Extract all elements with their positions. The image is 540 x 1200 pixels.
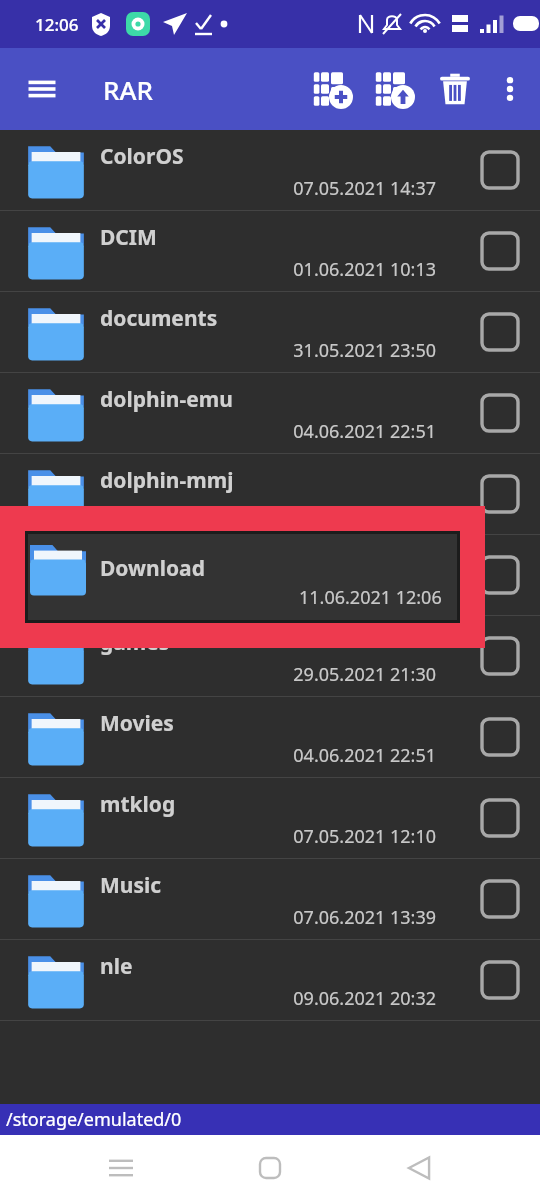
button[interactable]: Select dolphin-mmj: [472, 466, 528, 522]
staticText: 08.06.2021 11:02: [293, 500, 436, 525]
staticText: 31.05.2021 23:50: [293, 338, 436, 363]
staticText: RAR: [103, 72, 153, 107]
staticText: nle: [100, 952, 133, 981]
button[interactable]: documents: [0, 292, 540, 372]
button[interactable]: nle: [0, 940, 540, 1020]
staticText: 13.05.2021 10:51: [293, 581, 436, 606]
button[interactable]: Delete: [426, 60, 484, 118]
button[interactable]: dolphin-emu: [0, 373, 540, 453]
button[interactable]: Add to archive: [302, 58, 364, 120]
button[interactable]: Select mtklog: [472, 790, 528, 846]
button[interactable]: Extract archive: [364, 58, 426, 120]
staticText: Movies: [100, 709, 174, 738]
button[interactable]: Fonts: [0, 535, 540, 615]
button[interactable]: More options: [484, 63, 536, 115]
button[interactable]: dolphin-mmj: [0, 454, 540, 534]
button[interactable]: Select Fonts: [472, 547, 528, 603]
staticText: DCIM: [100, 223, 157, 252]
staticText: dolphin-emu: [100, 385, 233, 414]
staticText: Download: [100, 554, 205, 583]
button[interactable]: Select DCIM: [472, 223, 528, 279]
button[interactable]: DCIM: [0, 211, 540, 291]
button[interactable]: Select Movies: [472, 709, 528, 765]
button[interactable]: Select Music: [472, 871, 528, 927]
staticText: 09.06.2021 20:32: [293, 986, 436, 1011]
staticText: games: [100, 628, 170, 657]
staticText: /storage/emulated/0: [6, 1107, 182, 1132]
button[interactable]: Select nle: [472, 952, 528, 1008]
staticText: 12:06: [35, 13, 79, 36]
button[interactable]: Open navigation menu: [16, 63, 68, 115]
staticText: 07.06.2021 13:39: [293, 905, 436, 930]
button[interactable]: games: [0, 616, 540, 696]
button[interactable]: mtklog: [0, 778, 540, 858]
staticText: Music: [100, 871, 162, 900]
staticText: 04.06.2021 22:51: [293, 743, 436, 768]
button[interactable]: Select games: [472, 628, 528, 684]
staticText: 01.06.2021 10:13: [293, 257, 436, 282]
button[interactable]: Select documents: [472, 304, 528, 360]
button[interactable]: Movies: [0, 697, 540, 777]
staticText: 29.05.2021 21:30: [293, 662, 436, 687]
button[interactable]: Select dolphin-emu: [472, 385, 528, 441]
button[interactable]: Home: [242, 1140, 298, 1196]
staticText: 07.05.2021 14:37: [293, 176, 436, 201]
staticText: 11.06.2021 12:06: [299, 585, 442, 610]
staticText: 07.05.2021 12:10: [293, 824, 436, 849]
staticText: 04.06.2021 22:51: [293, 419, 436, 444]
staticText: ColorOS: [100, 142, 184, 171]
staticText: documents: [100, 304, 218, 333]
button[interactable]: Select ColorOS: [472, 142, 528, 198]
staticText: mtklog: [100, 790, 176, 819]
button[interactable]: Recent apps: [93, 1140, 149, 1196]
button[interactable]: Music: [0, 859, 540, 939]
button[interactable]: ColorOS: [0, 130, 540, 210]
staticText: Fonts: [100, 547, 158, 576]
staticText: dolphin-mmj: [100, 466, 234, 495]
button[interactable]: Back: [391, 1140, 447, 1196]
